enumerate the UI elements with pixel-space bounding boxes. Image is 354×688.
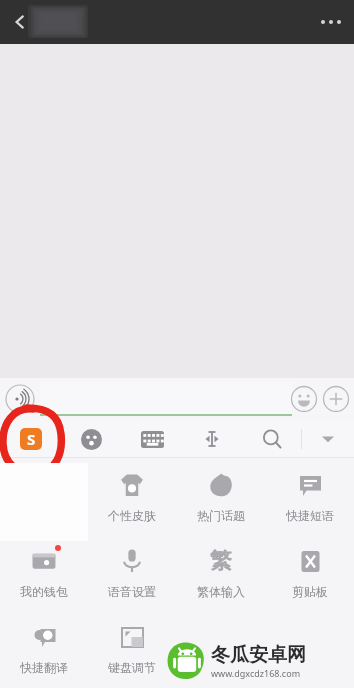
staticText: 繁: [210, 547, 232, 575]
button[interactable]: Add: [322, 385, 350, 413]
staticText: 剪贴板: [292, 584, 328, 599]
button[interactable]: 个性皮肤: [88, 458, 176, 534]
button[interactable]: 我的钱包: [0, 534, 88, 610]
button[interactable]: [0, 458, 88, 534]
button[interactable]: 热门话题: [176, 458, 265, 534]
button[interactable]: [265, 610, 354, 686]
button[interactable]: 快捷翻译: [0, 610, 88, 686]
button[interactable]: Move cursor: [182, 420, 242, 458]
button[interactable]: 剪贴板: [265, 534, 354, 610]
button[interactable]: Collapse: [302, 420, 354, 458]
button[interactable]: 快捷短语: [265, 458, 354, 534]
button[interactable]: Keyboard: [122, 420, 182, 458]
staticText: 我的钱包: [20, 584, 68, 599]
button[interactable]: [176, 610, 265, 686]
staticText: 快捷翻译: [20, 660, 68, 675]
staticText: 个性皮肤: [108, 508, 156, 523]
staticText: 快捷短语: [286, 508, 334, 523]
button[interactable]: 语音设置: [88, 534, 176, 610]
staticText: www.dgxcdz168.com: [211, 667, 301, 679]
button[interactable]: Search: [242, 420, 302, 458]
button[interactable]: 繁体输入: [176, 534, 265, 610]
staticText: S: [27, 429, 36, 449]
button[interactable]: 键盘调节: [88, 610, 176, 686]
button[interactable]: More options: [308, 0, 354, 44]
staticText: 键盘调节: [108, 660, 156, 675]
staticText: 热门话题: [197, 508, 245, 523]
button[interactable]: Back: [0, 2, 40, 42]
button[interactable]: Emoji panel: [61, 420, 122, 458]
button[interactable]: Emoji: [290, 385, 318, 413]
staticText: 冬瓜安卓网: [211, 643, 306, 667]
button[interactable]: Sogou input: [0, 420, 61, 458]
staticText: 繁体输入: [197, 584, 245, 599]
button[interactable]: Voice message: [5, 384, 35, 414]
button[interactable]: [40, 382, 292, 416]
staticText: 语音设置: [108, 584, 156, 599]
